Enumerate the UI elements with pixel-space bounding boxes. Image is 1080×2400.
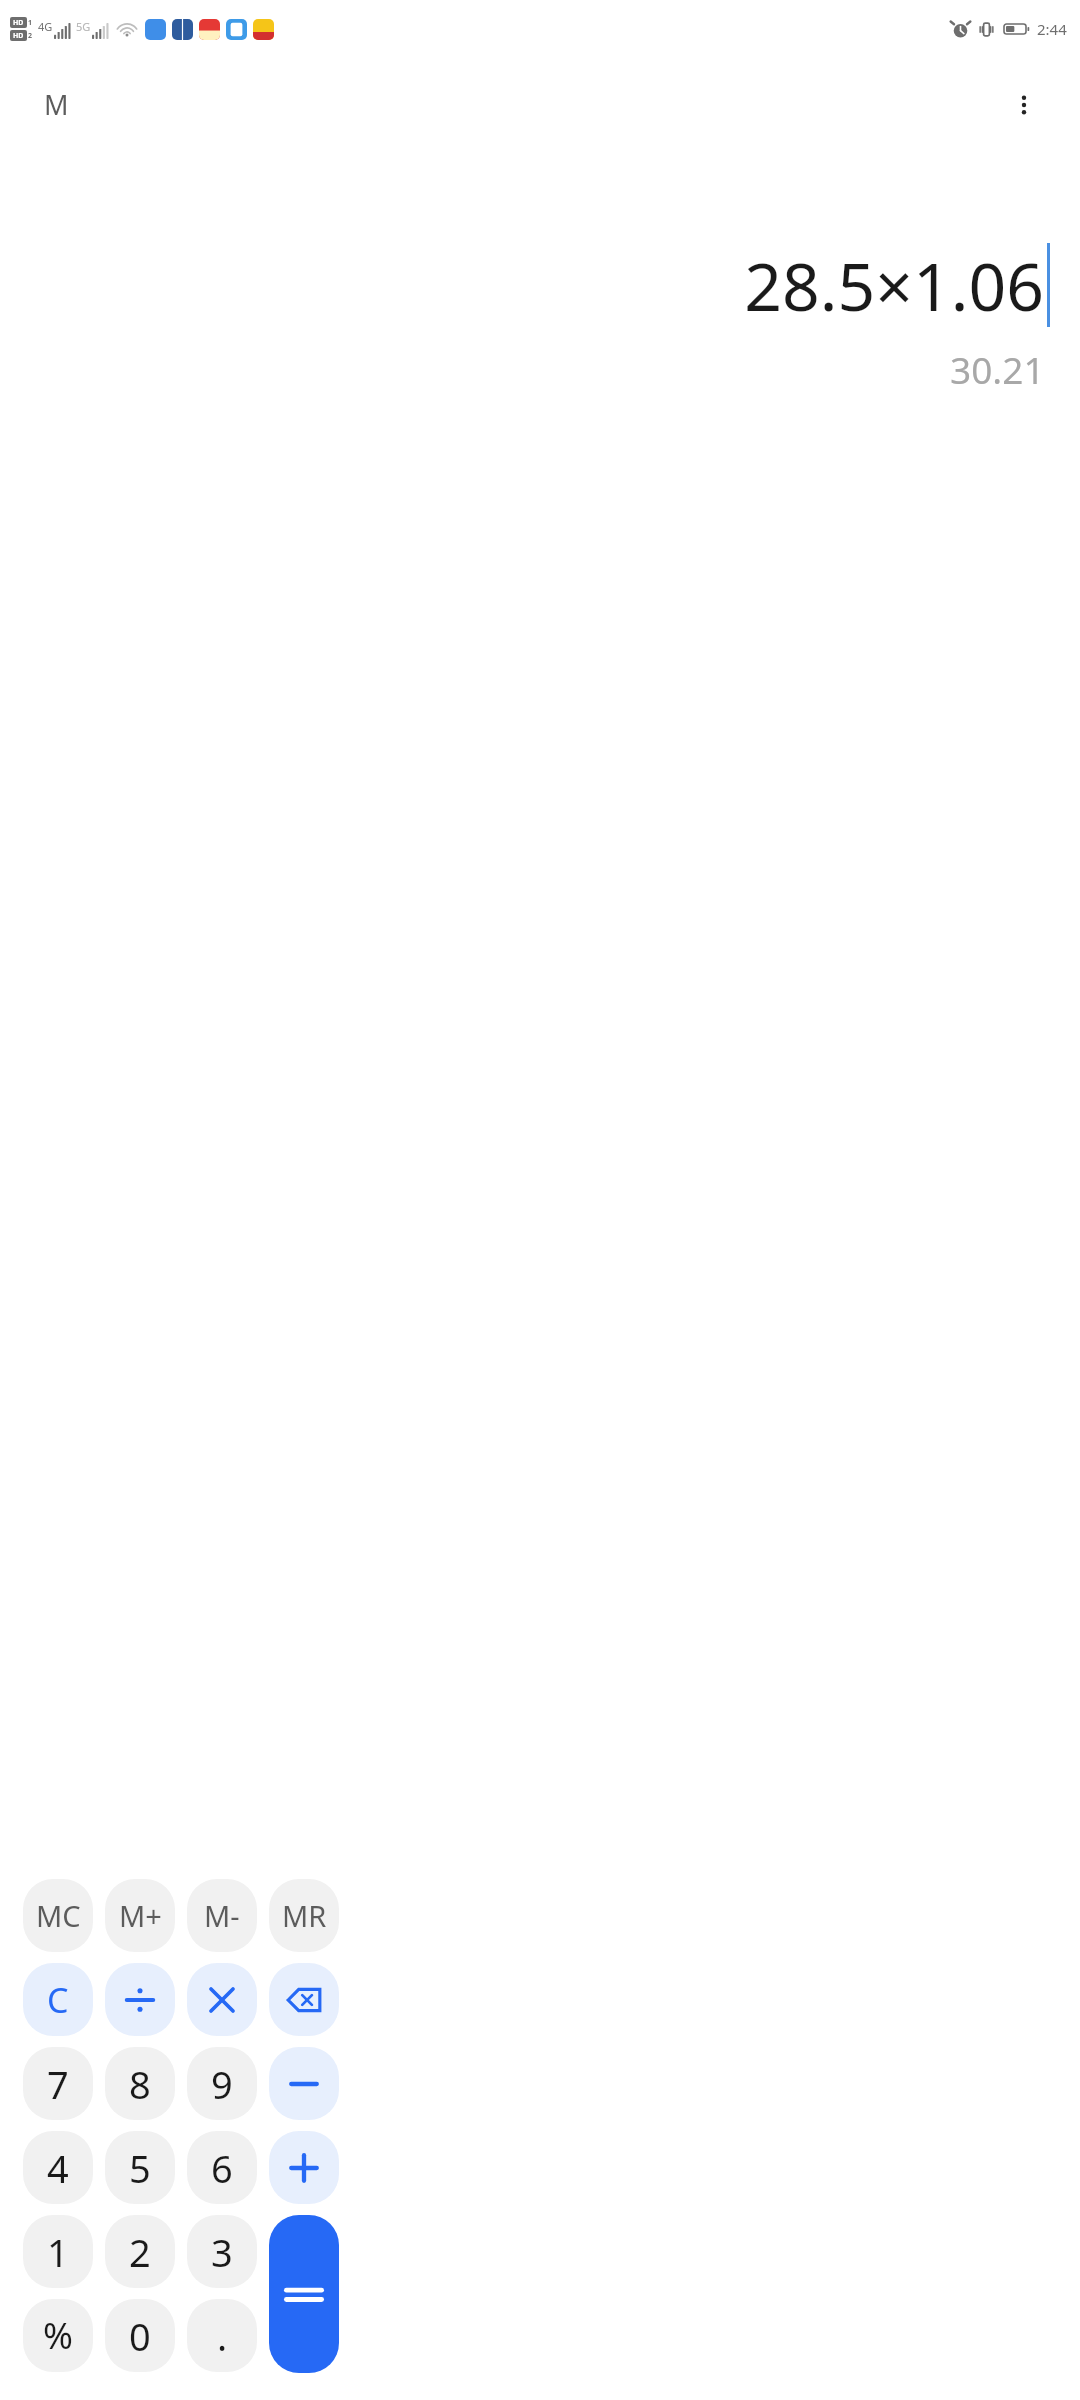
staticText: M+ [119, 1896, 162, 1935]
staticText: 1 [47, 2226, 69, 2278]
button[interactable]: Plus [269, 2131, 339, 2204]
button[interactable]: M+ [105, 1879, 175, 1952]
staticText: 30.21 [950, 344, 1045, 394]
button[interactable]: Minus [269, 2047, 339, 2120]
button[interactable]: 9 [187, 2047, 257, 2120]
button[interactable]: 8 [105, 2047, 175, 2120]
button[interactable]: Divide [105, 1963, 175, 2036]
staticText: 2 [28, 31, 33, 41]
staticText: 6 [211, 2142, 233, 2194]
staticText: % [43, 2311, 73, 2360]
staticText: MR [282, 1896, 327, 1935]
staticText: . [217, 2310, 228, 2362]
staticText: 2:44 [1037, 19, 1067, 39]
button[interactable]: M- [187, 1879, 257, 1952]
button[interactable]: 5 [105, 2131, 175, 2204]
staticText: M- [204, 1896, 240, 1935]
button[interactable]: Multiply [187, 1963, 257, 2036]
staticText: HD [13, 31, 24, 41]
button[interactable]: M [36, 78, 77, 131]
button[interactable]: MR [269, 1879, 339, 1952]
button[interactable]: MC [23, 1879, 93, 1952]
staticText: 1 [28, 18, 33, 28]
button[interactable]: 7 [23, 2047, 93, 2120]
staticText: 8 [129, 2058, 151, 2110]
staticText: 28.5×1.06 [744, 240, 1044, 330]
button[interactable]: % [23, 2299, 93, 2372]
button[interactable]: 6 [187, 2131, 257, 2204]
button[interactable]: More options [996, 77, 1052, 133]
button[interactable]: . [187, 2299, 257, 2372]
button[interactable]: 2 [105, 2215, 175, 2288]
staticText: 5 [129, 2142, 151, 2194]
staticText: 2 [129, 2226, 151, 2278]
button[interactable]: C [23, 1963, 93, 2036]
button[interactable]: 3 [187, 2215, 257, 2288]
staticText: 4G [38, 19, 53, 34]
button[interactable]: Equals [269, 2215, 339, 2373]
staticText: 9 [211, 2058, 233, 2110]
staticText: 4 [47, 2142, 69, 2194]
button[interactable]: 1 [23, 2215, 93, 2288]
staticText: 5G [76, 19, 91, 34]
button[interactable]: Backspace [269, 1963, 339, 2036]
button[interactable]: 4 [23, 2131, 93, 2204]
staticText: 3 [211, 2226, 233, 2278]
button[interactable]: 0 [105, 2299, 175, 2372]
staticText: HD [13, 18, 24, 28]
staticText: C [47, 1977, 69, 2023]
staticText: 7 [47, 2058, 69, 2110]
staticText: M [44, 86, 69, 123]
staticText: MC [36, 1896, 81, 1935]
staticText: 0 [129, 2310, 151, 2362]
